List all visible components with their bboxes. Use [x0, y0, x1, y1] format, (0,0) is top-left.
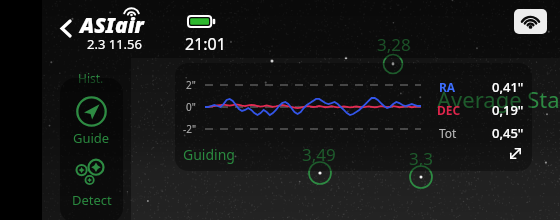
button[interactable]: Guiding [183, 145, 235, 164]
staticText: 3,28 [377, 33, 411, 56]
staticText: 2" [186, 78, 196, 92]
staticText: 3,3 [409, 147, 434, 170]
staticText: Guiding [183, 145, 235, 164]
staticText: Detect [72, 191, 112, 209]
staticText: Guide [73, 129, 110, 147]
staticText: Hist. [78, 70, 104, 86]
button[interactable]: Detect [60, 157, 123, 213]
button[interactable]: Guide [62, 96, 120, 148]
staticText: RA [439, 79, 456, 95]
staticText: 0" [186, 100, 196, 114]
staticText: 21:01 [185, 33, 226, 55]
button[interactable]: WiFi [514, 9, 547, 34]
staticText: air [115, 11, 144, 40]
staticText: 2.3 11.56 [87, 35, 142, 53]
button[interactable]: 2" [175, 63, 532, 171]
button[interactable]: Back [50, 13, 80, 43]
staticText: ASI [80, 11, 115, 40]
staticText: Average Sta [437, 84, 560, 114]
staticText: -2" [183, 122, 197, 136]
staticText: Tot [439, 125, 457, 141]
staticText: DEC [437, 102, 461, 118]
button[interactable]: Expand [505, 143, 525, 163]
staticText: 0,45" [492, 124, 524, 142]
staticText: 0,41" [492, 78, 524, 96]
staticText: 0,19" [492, 101, 524, 119]
staticText: 3,49 [302, 143, 336, 166]
